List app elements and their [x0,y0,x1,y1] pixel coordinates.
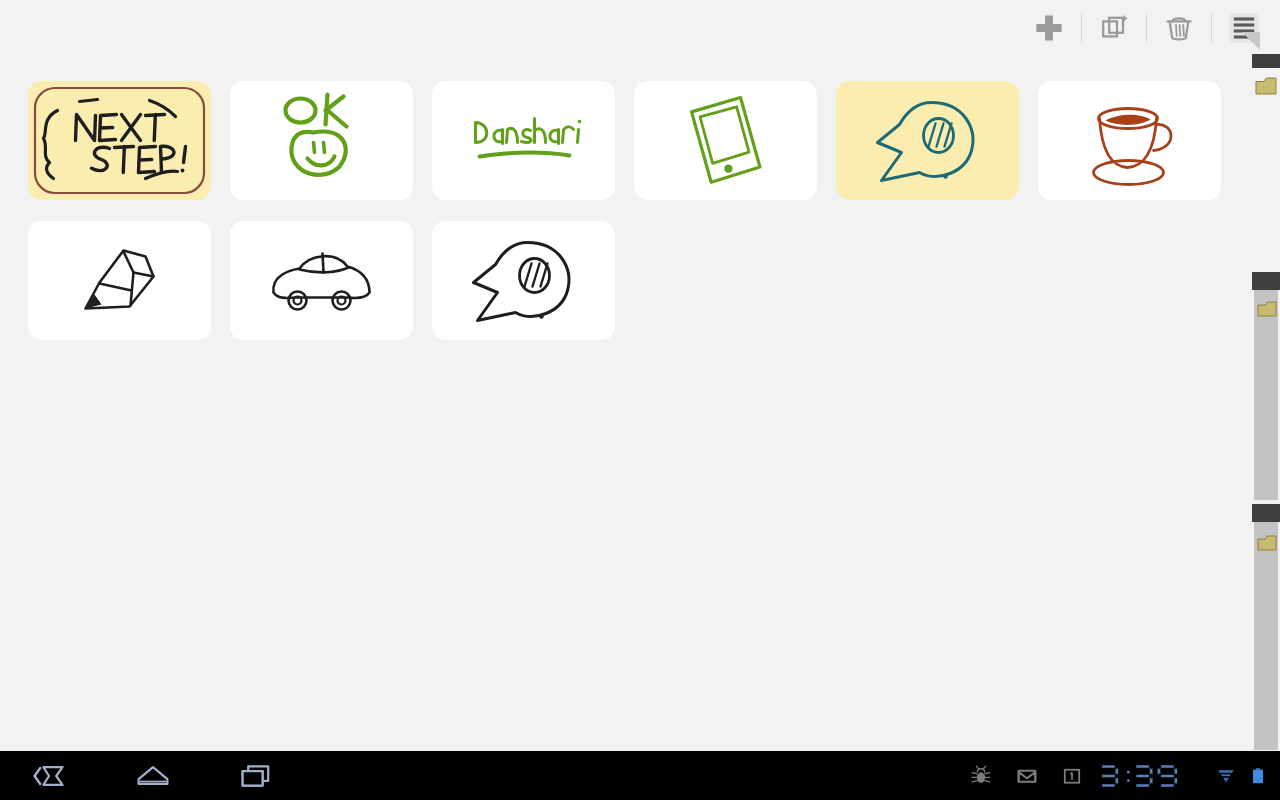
button[interactable]: Note: speech bubble [836,81,1019,200]
button[interactable]: Recents [218,751,296,800]
button[interactable]: Add [1017,0,1081,56]
button[interactable]: Note: phone sketch [634,81,817,200]
button[interactable]: Note: Next Step [28,81,211,200]
button[interactable]: Note: car sketch [230,221,413,340]
button[interactable]: Note: speech bubble [432,221,615,340]
button[interactable]: Menu [1212,0,1276,56]
button[interactable]: Note: coffee cup [1038,81,1221,200]
button[interactable]: Note: pencil sketch [28,221,211,340]
button[interactable]: Note: OK [230,81,413,200]
button[interactable]: Back [10,751,88,800]
button[interactable]: Home [114,751,192,800]
button[interactable]: Delete [1147,0,1211,56]
button[interactable]: Duplicate [1082,0,1146,56]
button[interactable]: Note: Danshari [432,81,615,200]
